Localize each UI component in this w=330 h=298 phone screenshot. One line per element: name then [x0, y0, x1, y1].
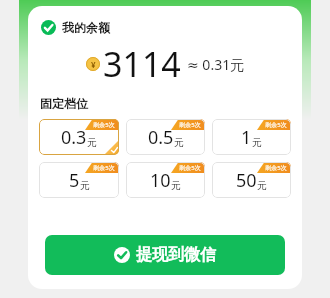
staticText: 剩余5次	[93, 121, 115, 129]
button[interactable]: 50	[212, 162, 291, 198]
staticText: 元	[257, 179, 267, 192]
staticText: ≈ 0.31元	[187, 55, 245, 74]
staticText: 10	[150, 168, 171, 193]
button[interactable]: 0.3	[39, 119, 119, 155]
staticText: 元	[252, 136, 262, 149]
staticText: 元	[80, 179, 90, 192]
staticText: 元	[171, 179, 181, 192]
button[interactable]: 10	[126, 162, 205, 198]
staticText: 5	[69, 168, 80, 193]
staticText: 剩余5次	[179, 121, 201, 129]
button[interactable]: 5	[39, 162, 119, 198]
staticText: 元	[87, 136, 97, 149]
staticText: 剩余5次	[93, 164, 115, 172]
button[interactable]: 0.5	[126, 119, 205, 155]
staticText: 0.3	[61, 125, 87, 150]
button[interactable]: 提现到微信	[45, 235, 285, 275]
staticText: 0.5	[148, 125, 174, 150]
staticText: 剩余5次	[265, 164, 287, 172]
staticText: 元	[174, 136, 184, 149]
staticText: 固定档位	[40, 96, 88, 111]
staticText: 剩余5次	[179, 164, 201, 172]
staticText: 剩余5次	[265, 121, 287, 129]
staticText: 我的余额	[62, 20, 110, 35]
staticText: ¥	[91, 59, 96, 70]
staticText: 50	[236, 168, 257, 193]
button[interactable]: 1	[212, 119, 291, 155]
staticText: 提现到微信	[136, 245, 216, 265]
staticText: 1	[241, 125, 252, 150]
staticText: 3114	[103, 41, 181, 87]
